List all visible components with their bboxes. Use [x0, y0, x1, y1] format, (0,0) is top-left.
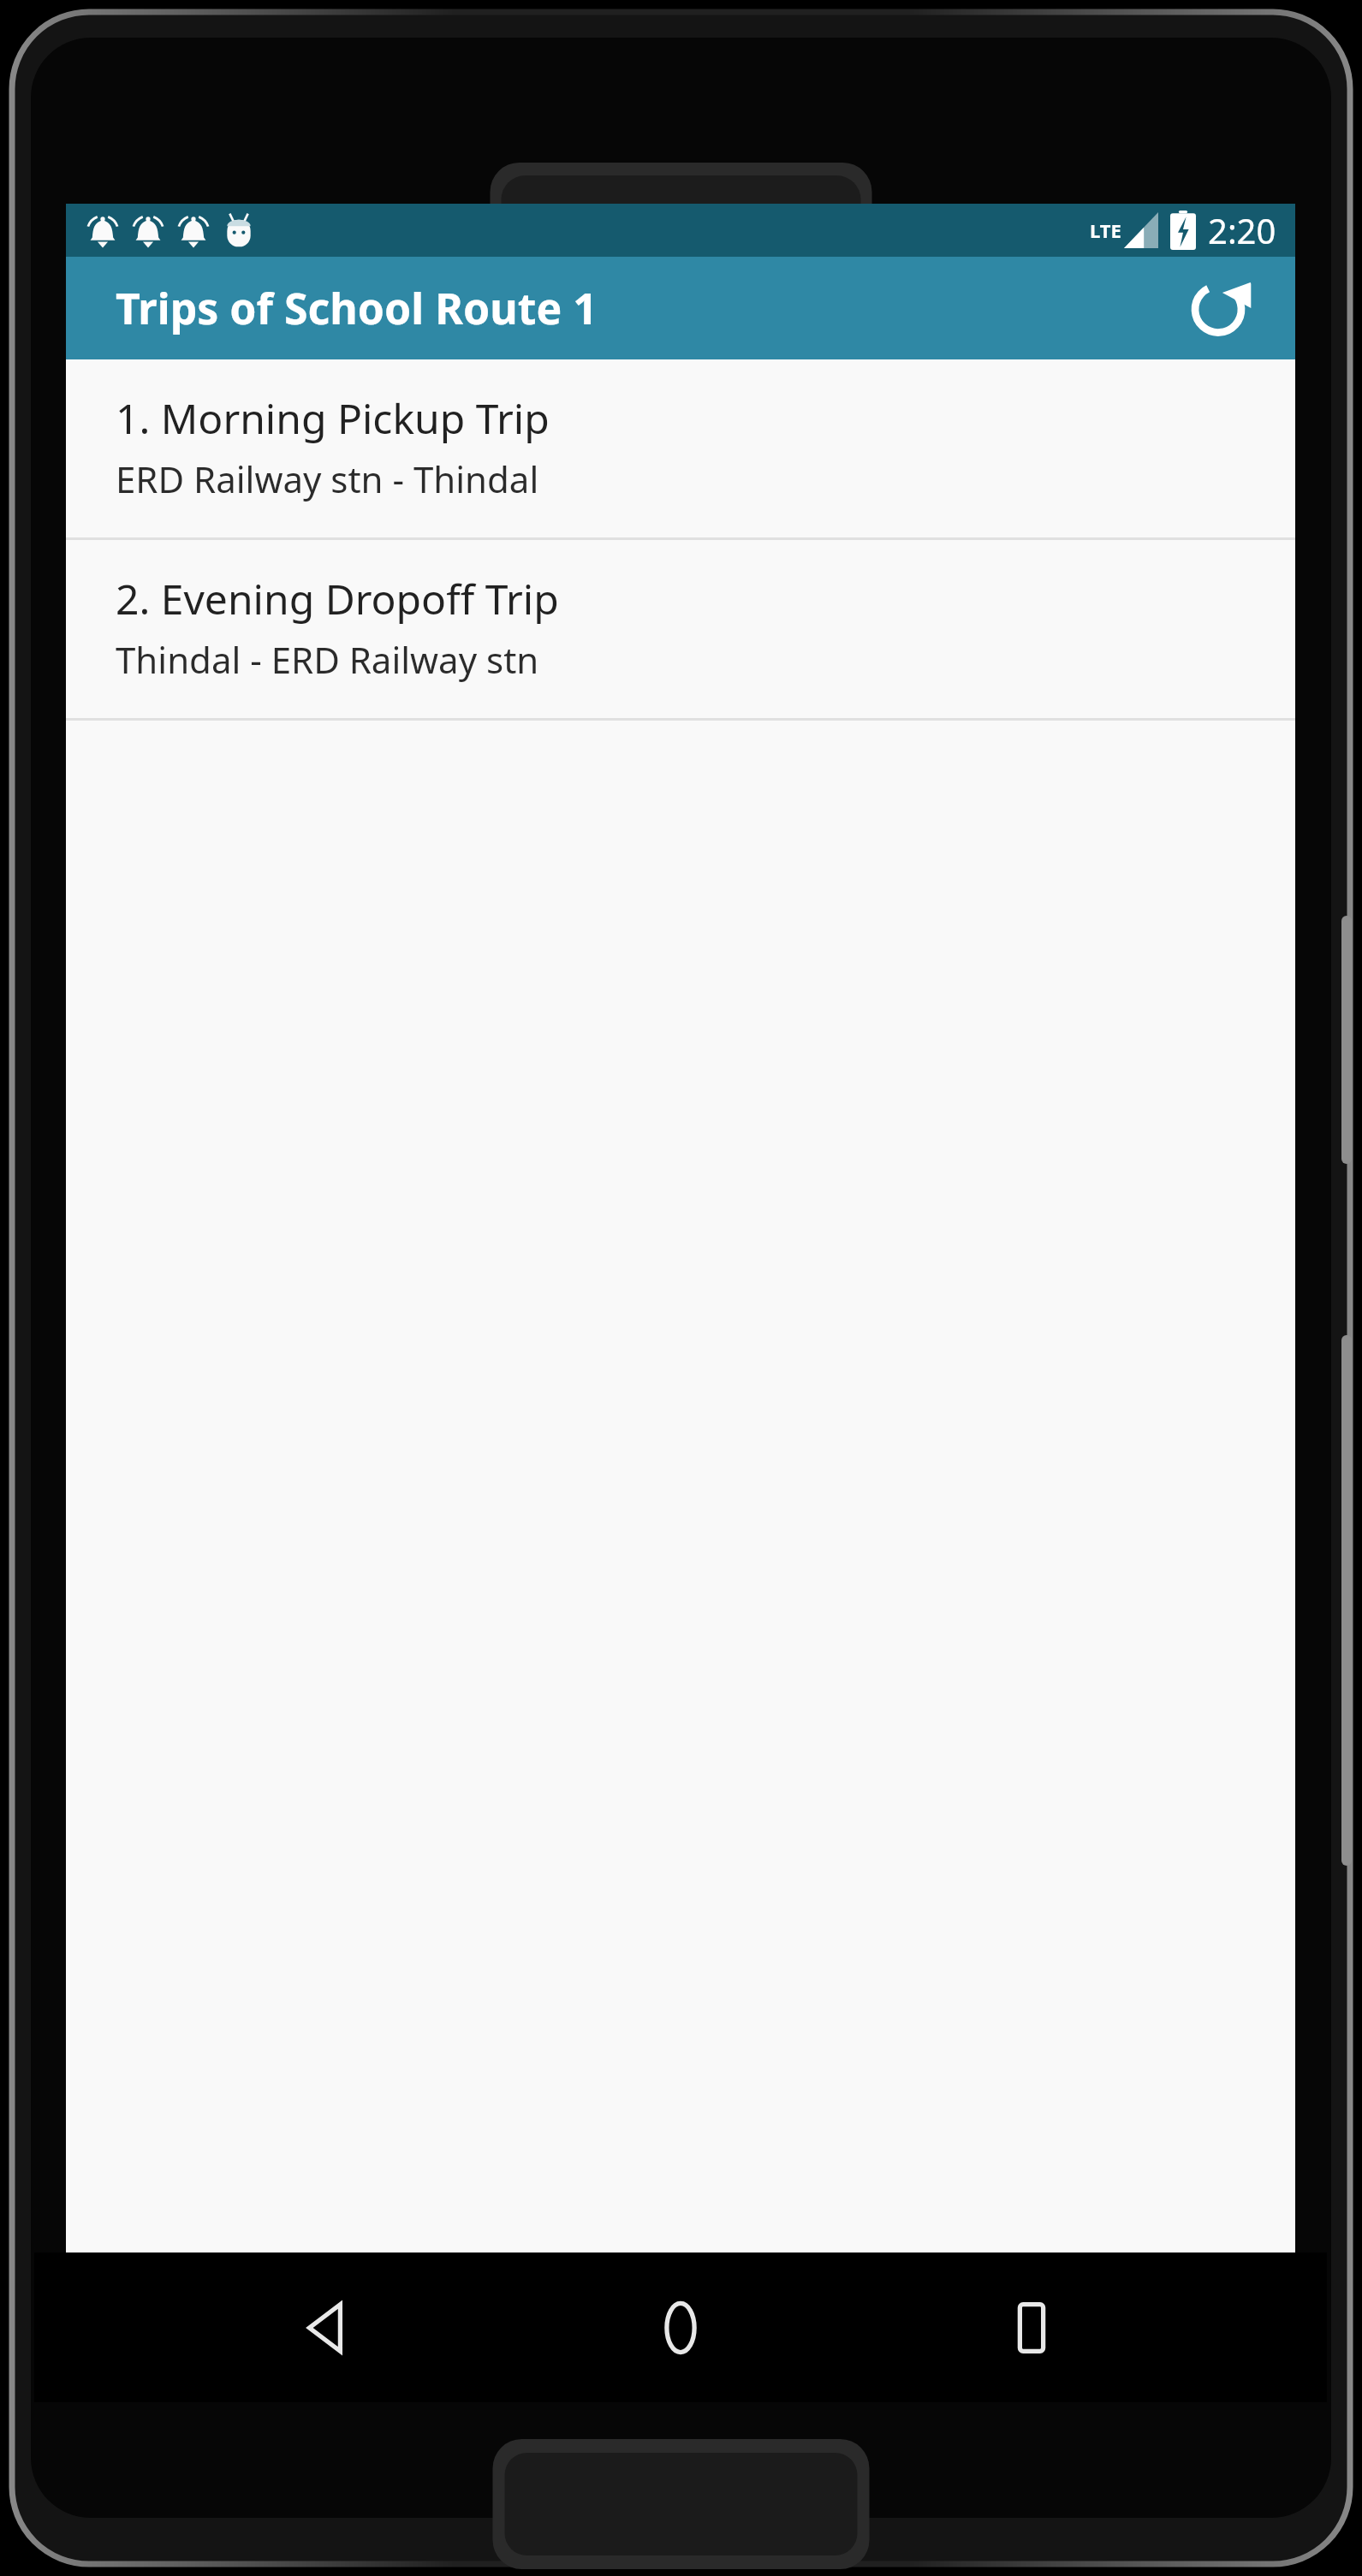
button[interactable]: Home [625, 2272, 736, 2383]
staticText: LTE [1090, 217, 1121, 243]
staticText: 2. Evening Dropoff Trip [116, 571, 559, 626]
staticText: 2:20 [1208, 207, 1276, 253]
staticText: 1. Morning Pickup Trip [116, 390, 550, 446]
button[interactable]: 1. Morning Pickup Trip [66, 359, 1295, 537]
staticText: Thindal - ERD Railway stn [116, 635, 539, 684]
button[interactable]: Refresh [1177, 267, 1259, 349]
staticText: ERD Railway stn - Thindal [116, 454, 539, 503]
button[interactable]: Recent apps [976, 2272, 1087, 2383]
button[interactable]: Back [274, 2272, 385, 2383]
button[interactable]: 2. Evening Dropoff Trip [66, 540, 1295, 718]
staticText: Trips of School Route 1 [116, 279, 598, 337]
